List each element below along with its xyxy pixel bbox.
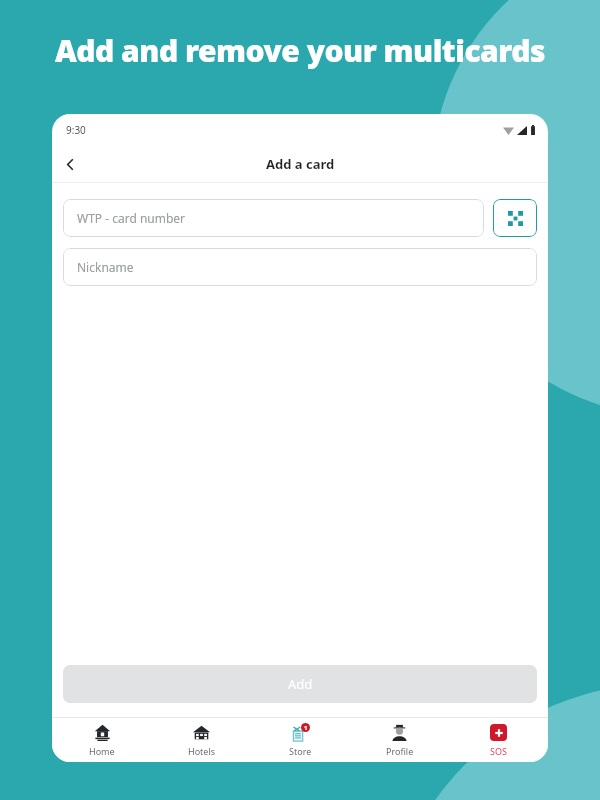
staticText: Home (89, 745, 115, 757)
staticText: Add a card (266, 155, 335, 173)
staticText: Profile (386, 745, 414, 757)
button[interactable]: Profile (350, 718, 449, 762)
button[interactable]: Home (52, 718, 152, 762)
staticText: SOS (490, 745, 507, 757)
staticText: 9:30 (66, 123, 86, 137)
button[interactable]: SOS (449, 718, 548, 762)
button[interactable]: Scan QR code (493, 199, 537, 237)
staticText: Add and remove your multicards (16, 30, 584, 71)
button[interactable]: 1 (251, 718, 350, 762)
staticText: Add (288, 675, 313, 693)
button[interactable]: Nickname (63, 248, 537, 286)
staticText: 1 (304, 724, 308, 732)
staticText: Store (289, 745, 312, 757)
button[interactable]: Hotels (152, 718, 251, 762)
button[interactable]: Back (52, 146, 88, 182)
staticText: Nickname (77, 259, 134, 275)
staticText: Hotels (188, 745, 216, 757)
button[interactable]: WTP - card number (63, 199, 484, 237)
staticText: WTP - card number (77, 210, 186, 226)
